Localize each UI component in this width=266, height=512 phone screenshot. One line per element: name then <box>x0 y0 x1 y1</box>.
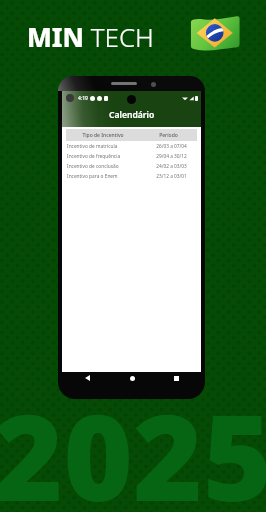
button[interactable]: Incentivo de frequência <box>62 151 201 161</box>
staticText: Incentivo de frequência <box>67 153 142 160</box>
staticText: 26/03 a 07/04 <box>142 143 201 150</box>
button[interactable]: Home <box>124 370 140 386</box>
staticText: 2025 <box>0 374 266 512</box>
staticText: Incentivo de conclusão <box>67 163 142 170</box>
button[interactable]: Back <box>79 370 95 386</box>
button[interactable]: Recent apps <box>168 370 184 386</box>
staticText: 24/02 a 03/03 <box>142 163 201 170</box>
staticText: Calendário <box>109 109 155 121</box>
staticText: Incentivo de matrícula <box>67 143 142 150</box>
staticText: Incentivo para o Enem <box>67 173 142 180</box>
staticText: Tipo de Incentivo <box>66 132 140 139</box>
staticText: TECH <box>84 19 154 54</box>
button[interactable]: Incentivo de conclusão <box>62 161 201 171</box>
button[interactable]: Incentivo para o Enem <box>62 171 201 181</box>
staticText: 29/04 a 30/12 <box>142 153 201 160</box>
staticText: MIN <box>27 19 84 54</box>
button[interactable]: Incentivo de matrícula <box>62 141 201 151</box>
staticText: 23/12 a 03/01 <box>142 173 201 180</box>
staticText: Período <box>140 132 197 139</box>
staticText: 4:19 <box>78 95 88 102</box>
